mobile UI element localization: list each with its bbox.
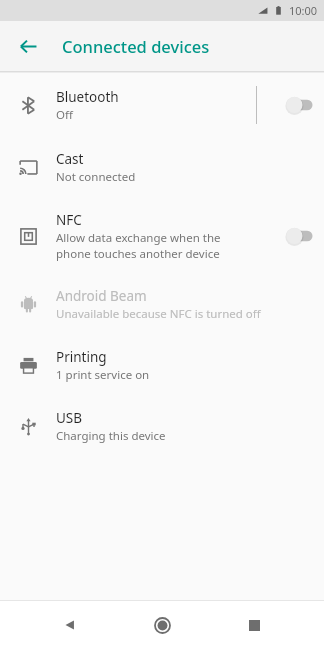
staticText: Charging this device	[56, 428, 166, 444]
button[interactable]: Printing	[0, 335, 324, 396]
staticText: Not connected	[56, 169, 136, 185]
staticText: Printing	[56, 348, 107, 366]
staticText: 1 print service on	[56, 367, 150, 383]
button[interactable]: Back	[10, 28, 46, 64]
staticText: Connected devices	[62, 35, 210, 57]
staticText: Android Beam	[56, 287, 147, 305]
staticText: Allow data exchange when the phone touch…	[56, 230, 221, 261]
button[interactable]: Android Beam	[0, 274, 324, 335]
button[interactable]: Toggle	[274, 88, 324, 122]
button[interactable]: USB	[0, 396, 324, 457]
staticText: Bluetooth	[56, 88, 119, 106]
button[interactable]: Cast	[0, 137, 324, 198]
button[interactable]: Home	[140, 603, 184, 647]
staticText: Off	[56, 107, 73, 123]
staticText: Unavailable because NFC is turned off	[56, 306, 261, 322]
button[interactable]: Recent apps	[232, 603, 276, 647]
staticText: Cast	[56, 150, 84, 168]
button[interactable]: Bluetooth	[0, 73, 324, 137]
staticText: NFC	[56, 211, 82, 229]
button[interactable]: Back	[48, 603, 92, 647]
staticText: USB	[56, 409, 83, 427]
button[interactable]: NFC	[0, 198, 324, 274]
staticText: 10:00	[289, 3, 318, 18]
button[interactable]: Toggle	[274, 219, 324, 253]
